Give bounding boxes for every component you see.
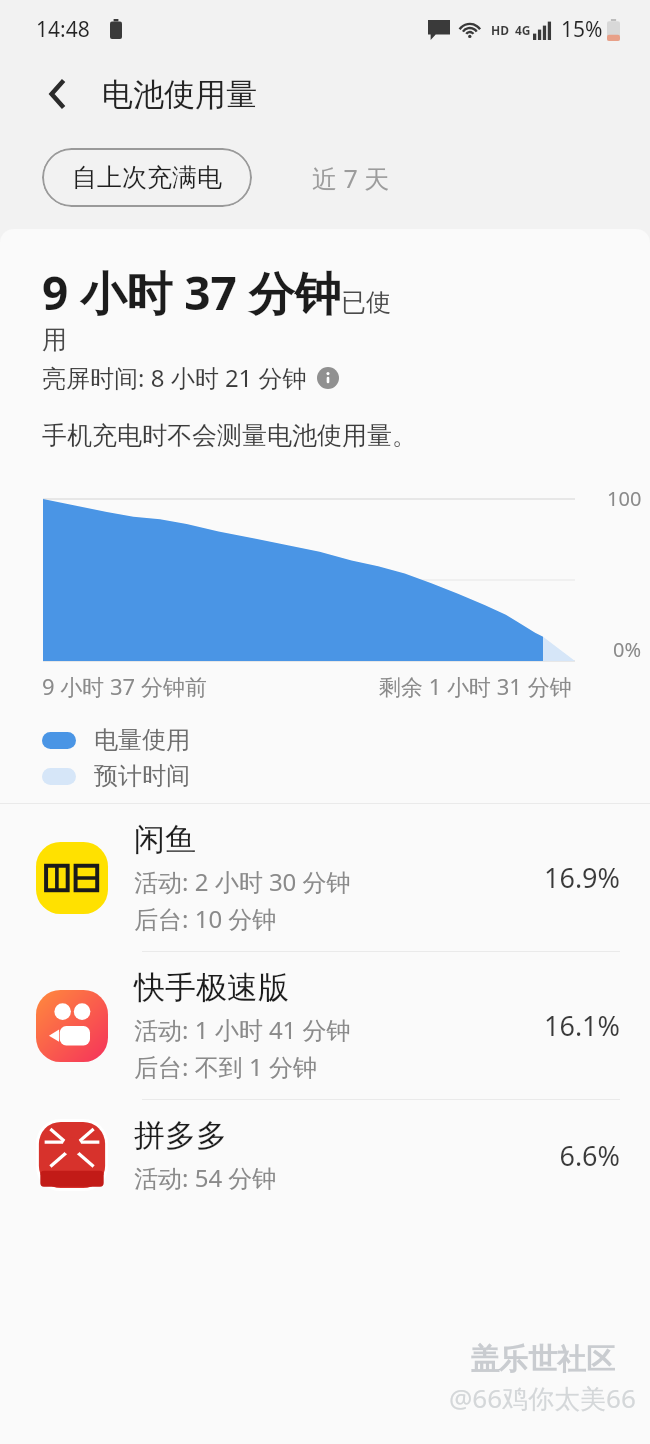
staticText: @66鸡你太美66	[449, 1380, 636, 1416]
staticText: 电量使用	[94, 725, 190, 755]
button[interactable]: Back	[34, 70, 82, 118]
staticText: HD	[491, 22, 509, 38]
staticText: 后台: 10 分钟	[134, 902, 277, 935]
staticText: 活动: 2 小时 30 分钟	[134, 865, 351, 898]
staticText: 预计时间	[94, 761, 190, 791]
staticText: 后台: 不到 1 分钟	[134, 1050, 317, 1083]
staticText: 活动: 54 分钟	[134, 1161, 277, 1194]
button[interactable]: 自上次充满电	[42, 148, 252, 207]
staticText: 6.6%	[559, 1137, 620, 1174]
staticText: 4G	[515, 22, 531, 38]
staticText: 快手极速版	[134, 968, 289, 1007]
staticText: 剩余 1 小时 31 分钟	[379, 671, 572, 701]
button[interactable]: 拼多多	[0, 1100, 650, 1210]
staticText: 15%	[561, 15, 603, 44]
staticText: 已使	[341, 287, 391, 318]
staticText: 100	[607, 485, 642, 512]
staticText: 16.9%	[543, 859, 620, 896]
button[interactable]: 闲鱼	[0, 804, 650, 951]
button[interactable]: 近 7 天	[298, 149, 404, 207]
staticText: 盖乐世社区	[470, 1341, 615, 1378]
button[interactable]: Info	[317, 367, 339, 389]
staticText: 16.1%	[543, 1007, 620, 1044]
staticText: 自上次充满电	[72, 162, 222, 193]
staticText: 闲鱼	[134, 820, 196, 859]
button[interactable]: 快手极速版	[0, 952, 650, 1099]
staticText: 9 小时 37 分钟	[42, 261, 341, 324]
staticText: 0%	[613, 636, 642, 663]
staticText: 9 小时 37 分钟前	[42, 671, 207, 701]
staticText: 14:48	[36, 15, 90, 44]
staticText: 近 7 天	[312, 161, 390, 195]
staticText: 用	[42, 324, 67, 355]
staticText: 活动: 1 小时 41 分钟	[134, 1013, 351, 1046]
staticText: 手机充电时不会测量电池使用量。	[42, 420, 417, 451]
staticText: 拼多多	[134, 1116, 227, 1155]
staticText: 亮屏时间: 8 小时 21 分钟	[42, 361, 307, 394]
staticText: 电池使用量	[102, 75, 257, 114]
